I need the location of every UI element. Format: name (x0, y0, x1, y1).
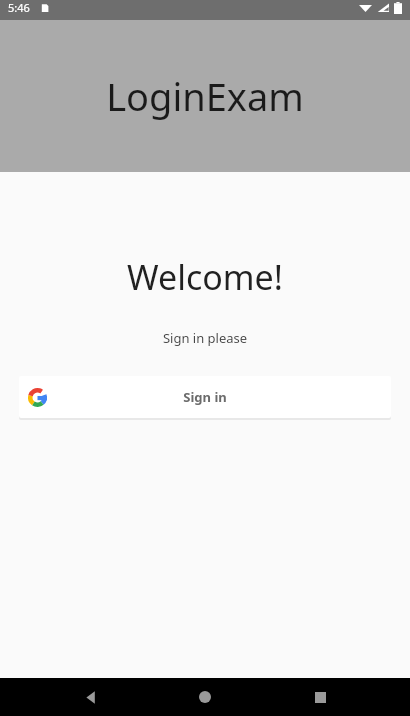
staticText: Sign in (183, 388, 227, 406)
staticText: LoginExam (106, 70, 304, 122)
button[interactable]: Sign in (19, 376, 391, 418)
staticText: Welcome! (0, 254, 410, 300)
button[interactable]: Recent apps (296, 678, 344, 716)
staticText: 5:46 (8, 0, 30, 15)
button[interactable]: Back (67, 678, 115, 716)
button[interactable]: Home (181, 678, 229, 716)
staticText: Sign in please (0, 329, 410, 347)
